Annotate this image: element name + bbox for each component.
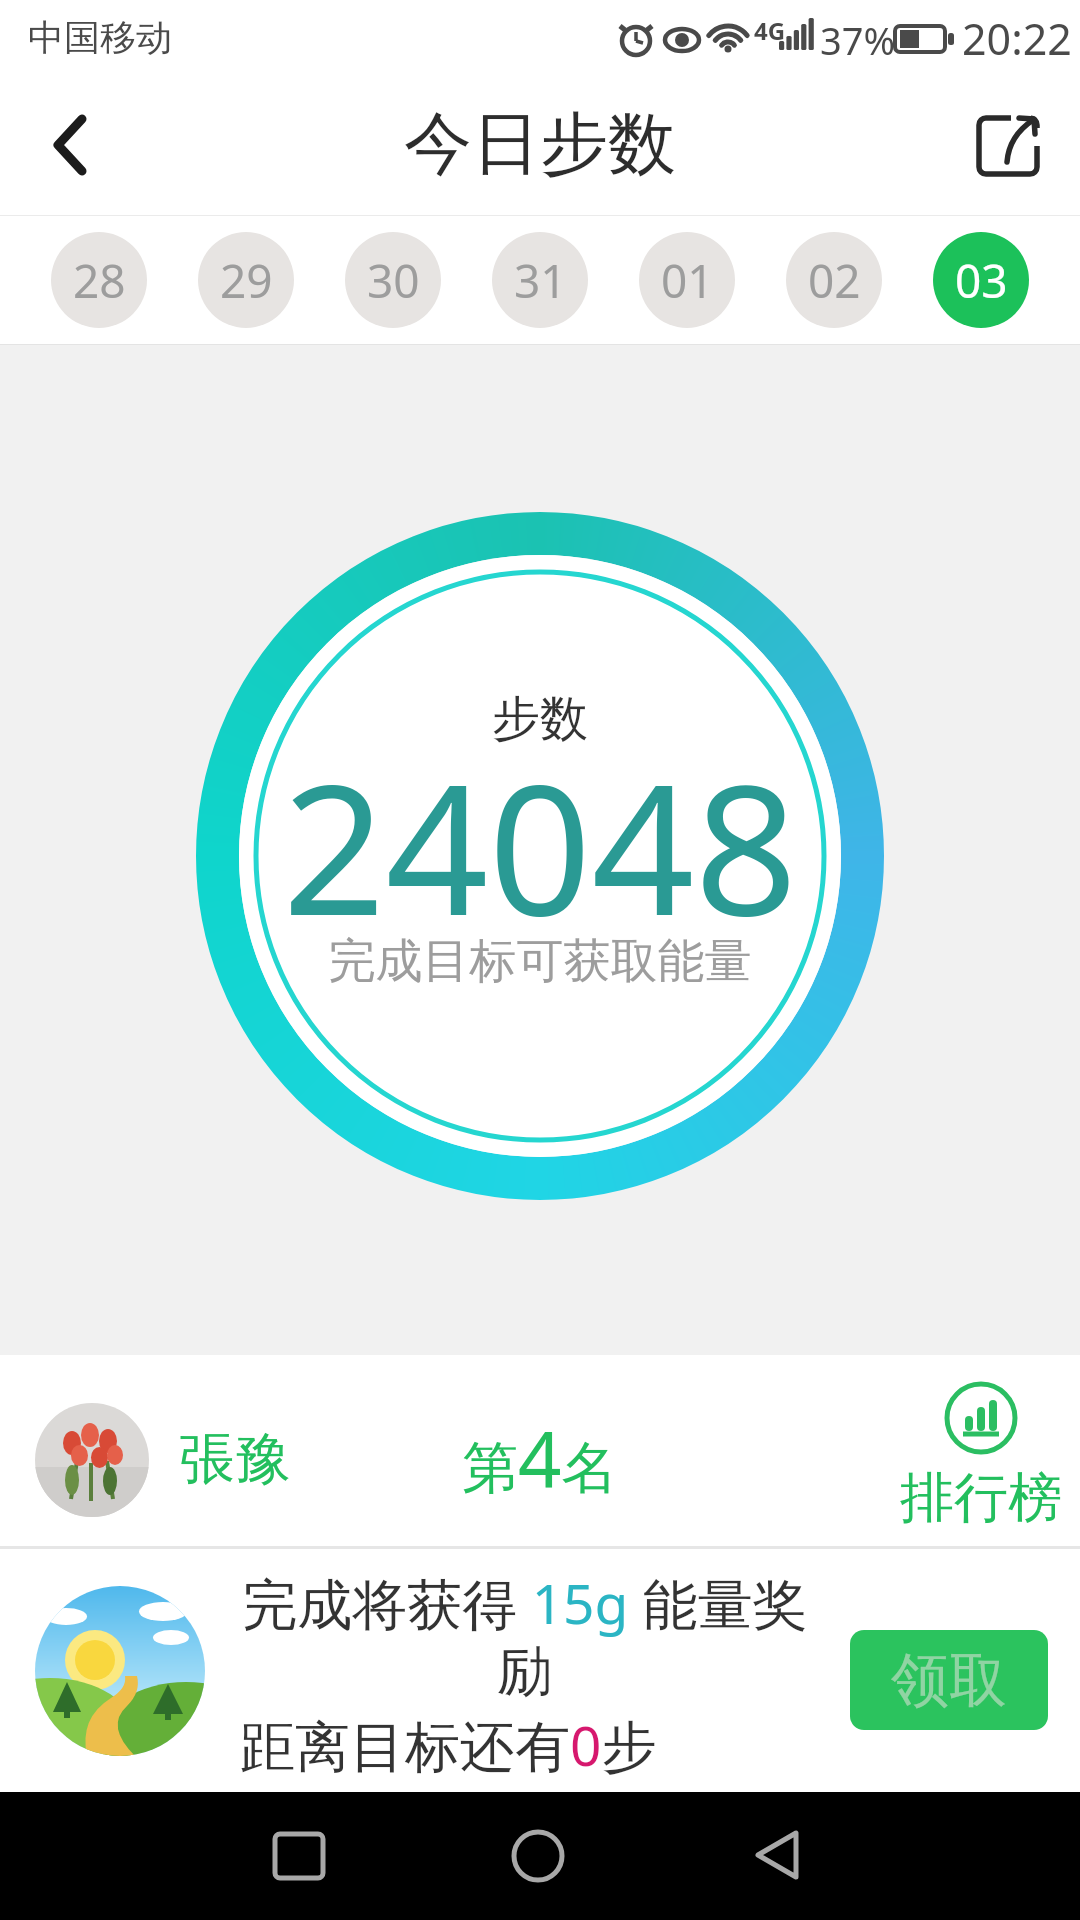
staticText: 中国移动 [28,15,172,60]
staticText: 02 [808,249,861,312]
button[interactable]: 03 [933,232,1029,328]
staticText: 4G [754,14,786,47]
button[interactable]: 31 [492,232,588,328]
button[interactable]: 02 [786,232,882,328]
staticText: 30 [367,249,420,312]
button[interactable]: 張豫 [0,1355,1080,1546]
staticText: 领取 [891,1644,1007,1717]
staticText: 今日步数 [404,102,676,188]
staticText: 完成将获得 15g 能量奖励 [240,1565,810,1707]
staticText: 排行榜 [900,1464,1062,1532]
staticText: 完成目标可获取能量 [140,932,940,991]
staticText: 03 [955,249,1008,312]
staticText: 28 [73,249,126,312]
button[interactable]: 排行榜 [900,1380,1062,1532]
staticText: 01 [661,249,714,312]
button[interactable]: 29 [198,232,294,328]
staticText: 31 [514,249,567,312]
button[interactable]: 领取 [850,1630,1048,1730]
staticText: 29 [220,249,273,312]
staticText: 張豫 [179,1424,291,1495]
button[interactable] [728,1806,828,1906]
staticText: 第4名 [462,1406,618,1510]
button[interactable]: 01 [639,232,735,328]
staticText: 步数 [140,689,940,749]
button[interactable] [972,109,1044,181]
button[interactable] [488,1806,588,1906]
button[interactable] [249,1806,349,1906]
button[interactable]: 30 [345,232,441,328]
staticText: 37% [820,14,896,66]
staticText: 20:22 [962,9,1072,68]
button[interactable] [30,105,110,185]
button[interactable]: 28 [51,232,147,328]
staticText: 24048 [140,723,940,968]
staticText: 距离目标还有0步 [240,1707,657,1782]
